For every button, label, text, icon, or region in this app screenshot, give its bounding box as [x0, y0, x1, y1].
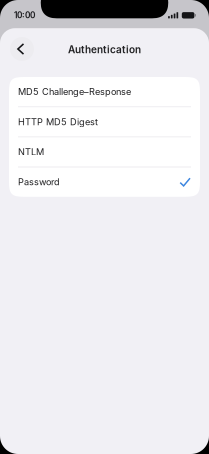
button[interactable]: Password	[9, 167, 200, 197]
staticText: NTLM	[18, 146, 44, 157]
button[interactable]: Back	[10, 37, 34, 61]
staticText: Authentication	[68, 44, 141, 56]
staticText: Password	[18, 176, 60, 188]
staticText: HTTP MD5 Digest	[18, 116, 98, 127]
staticText: 10:00	[14, 10, 35, 20]
button[interactable]: NTLM	[9, 137, 200, 167]
button[interactable]: MD5 Challenge–Response	[9, 77, 200, 106]
button[interactable]: HTTP MD5 Digest	[9, 107, 200, 137]
staticText: MD5 Challenge–Response	[18, 86, 131, 97]
